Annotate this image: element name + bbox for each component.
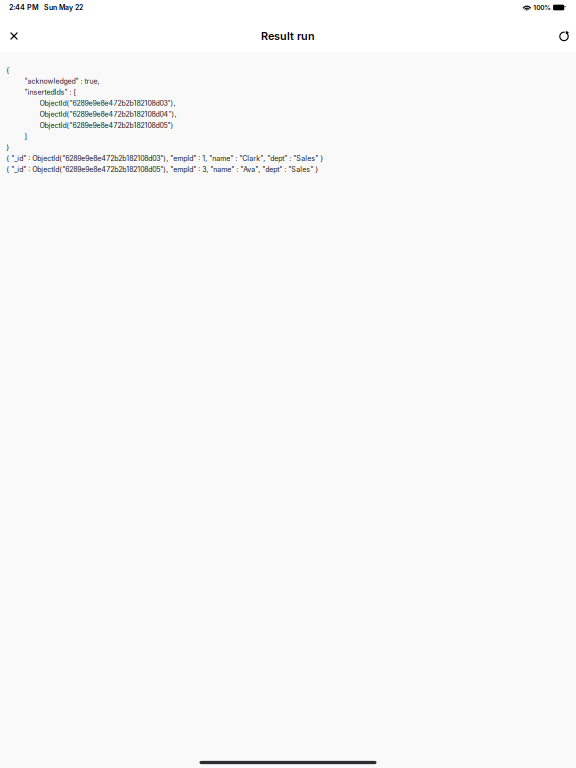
staticText: "insertedIds" : [ (24, 88, 76, 96)
button[interactable]: Refresh (552, 22, 576, 50)
staticText: { "_id" : ObjectId("6289e9e8e472b2b18210… (6, 165, 318, 174)
staticText: "acknowledged" : true, (24, 77, 99, 85)
staticText: { (6, 66, 9, 74)
staticText: { "_id" : ObjectId("6289e9e8e472b2b18210… (6, 154, 323, 163)
staticText: 100% (533, 3, 551, 11)
staticText: 2:44 PM (9, 3, 39, 12)
staticText: ObjectId("6289e9e8e472b2b182108d04"), (39, 110, 176, 118)
staticText: } (6, 143, 9, 152)
staticText: Sun May 22 (44, 3, 83, 12)
staticText: Result run (261, 29, 315, 43)
button[interactable]: Close (0, 22, 28, 50)
staticText: ObjectId("6289e9e8e472b2b182108d05") (39, 121, 173, 130)
staticText: ] (24, 132, 27, 141)
staticText: ObjectId("6289e9e8e472b2b182108d03"), (39, 99, 175, 107)
